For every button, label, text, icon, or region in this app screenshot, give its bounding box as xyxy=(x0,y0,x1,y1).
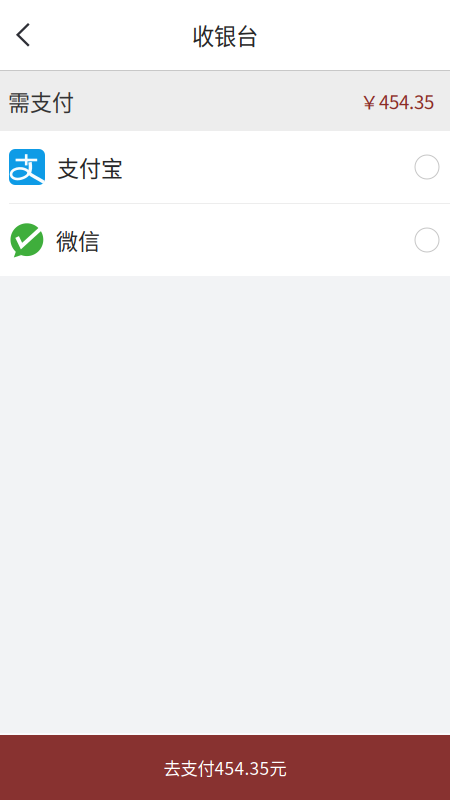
button[interactable]: Back xyxy=(0,10,46,59)
button[interactable]: 微信 xyxy=(0,204,450,276)
staticText: 支付宝 xyxy=(57,151,123,183)
staticText: 收银台 xyxy=(192,19,258,51)
button[interactable]: 支付宝 xyxy=(0,131,450,203)
staticText: 去支付454.35元 xyxy=(163,755,286,780)
staticText: 微信 xyxy=(56,224,100,256)
staticText: 需支付 xyxy=(8,85,74,117)
staticText: ￥454.35 xyxy=(360,87,434,114)
button[interactable]: 去支付454.35元 xyxy=(0,735,450,800)
